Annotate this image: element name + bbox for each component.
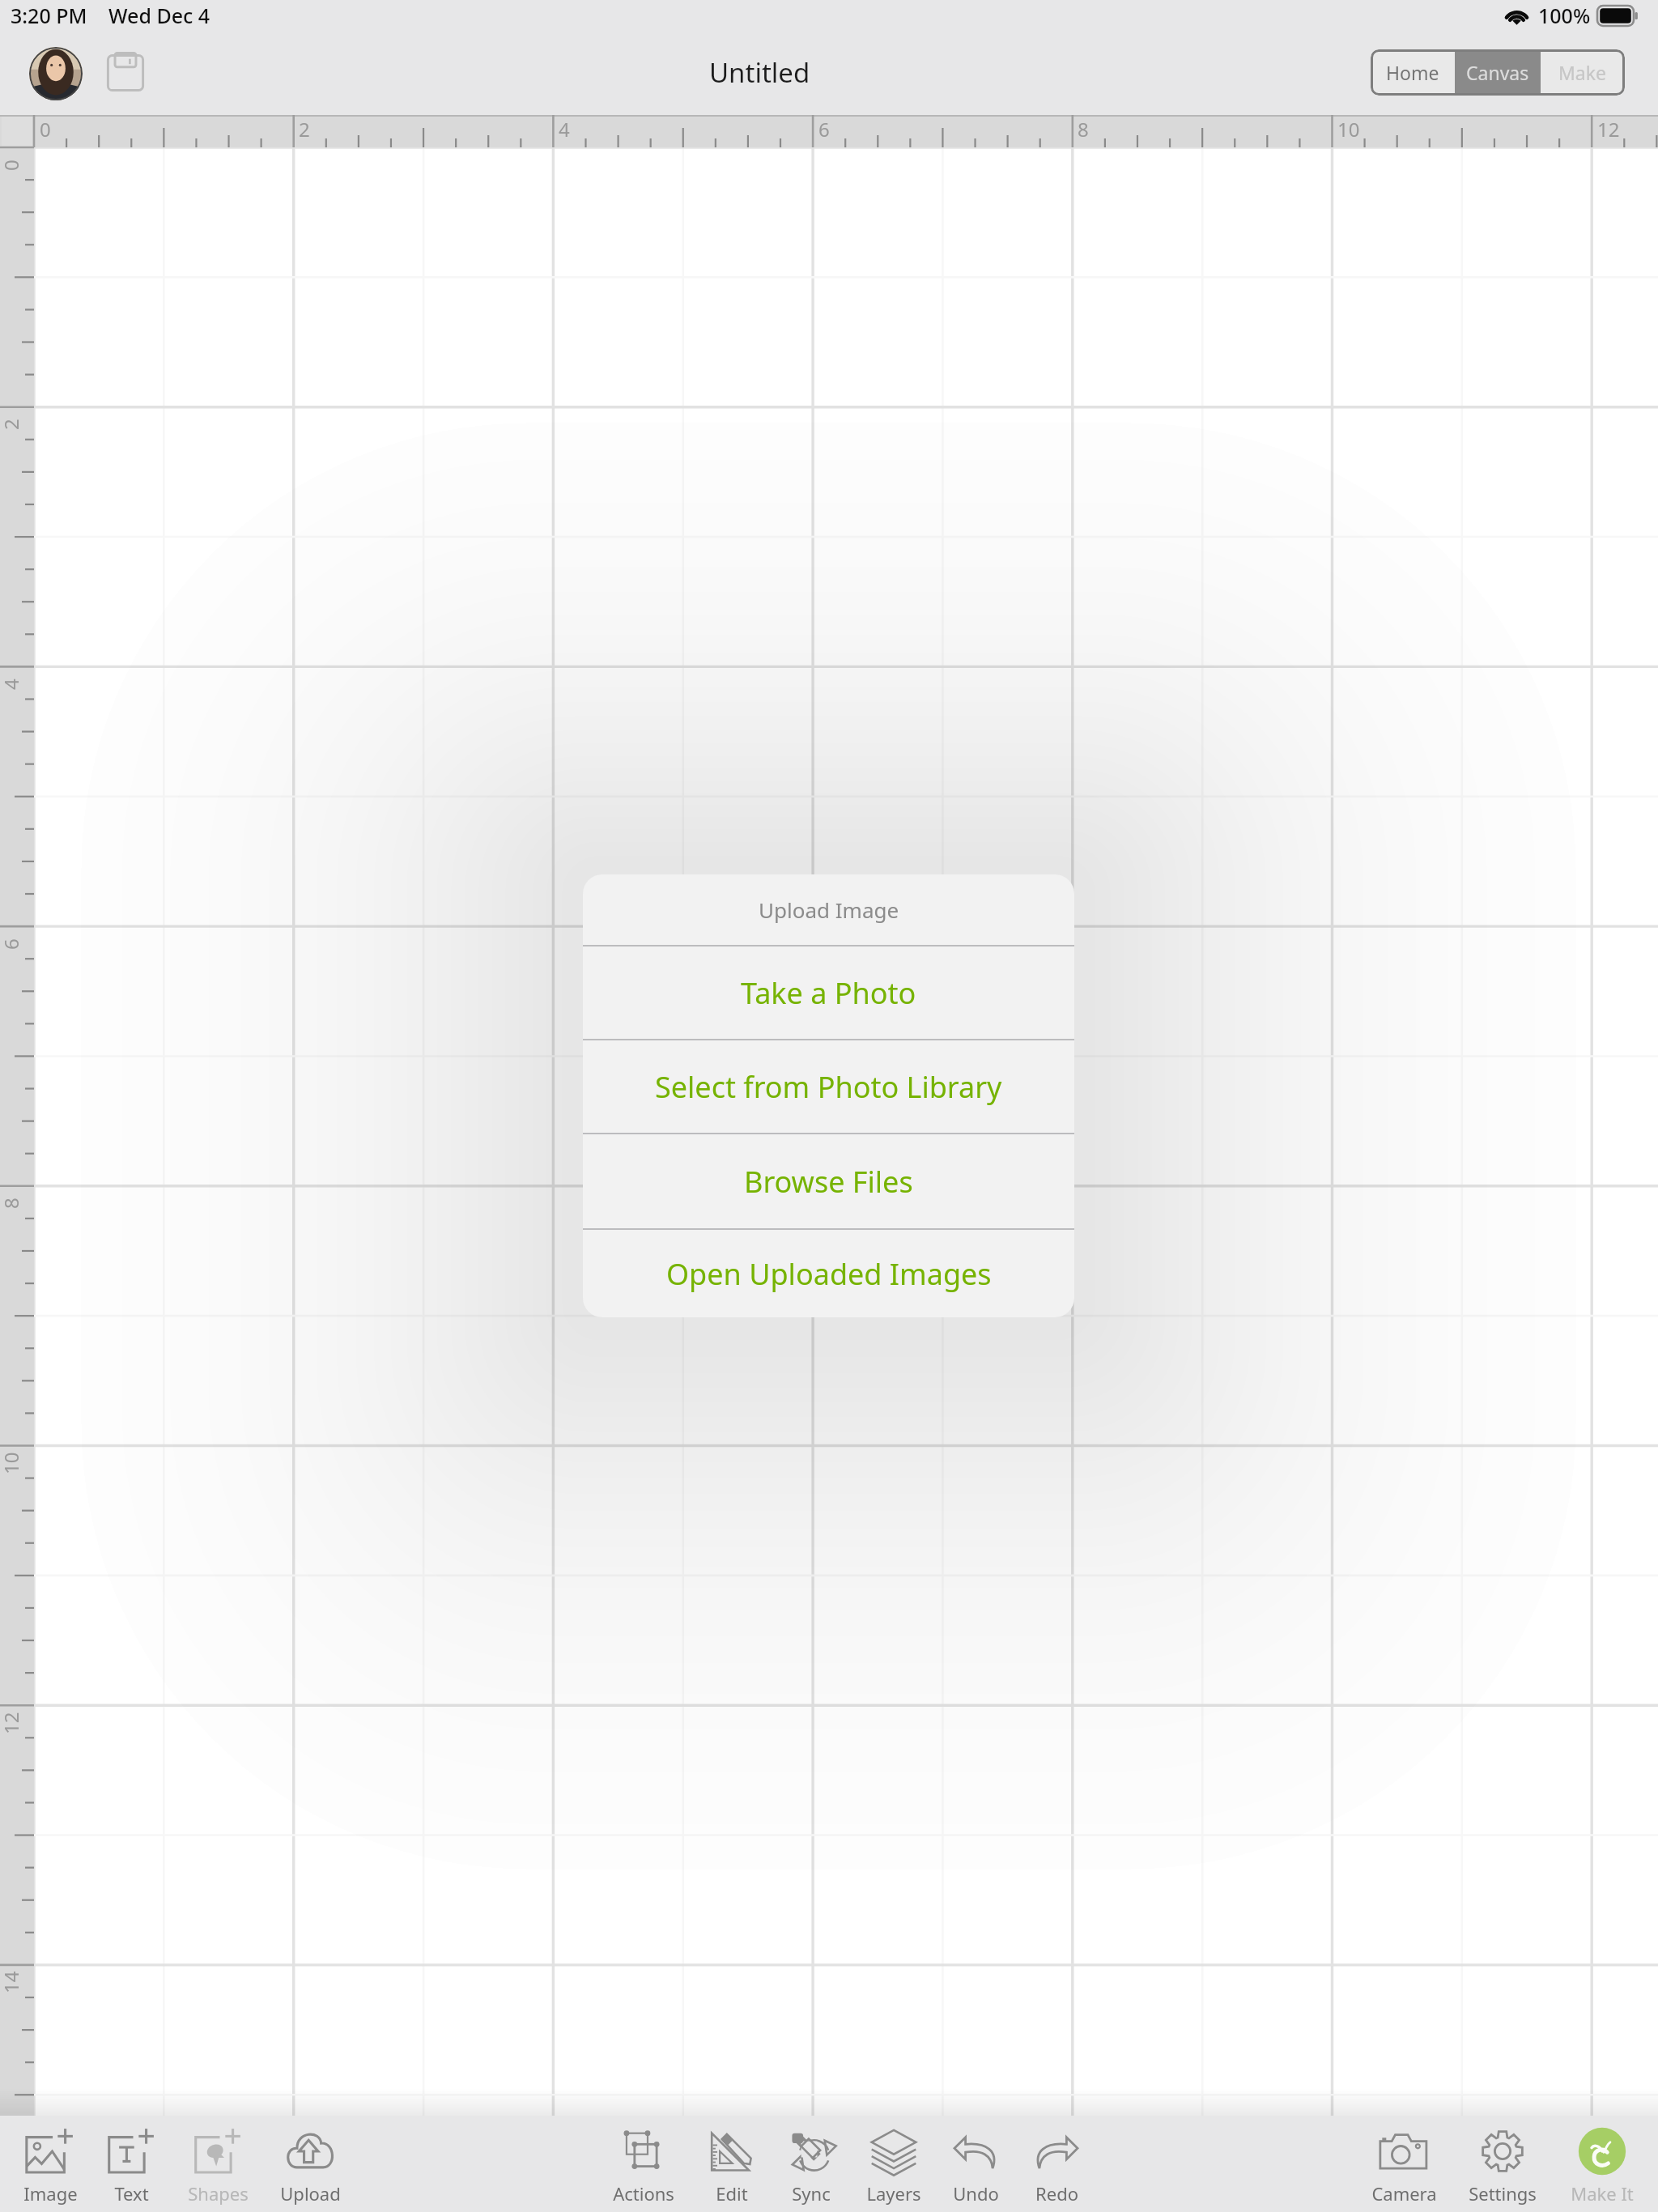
staticText: 100% bbox=[1538, 2, 1591, 29]
staticText: 14 bbox=[0, 1971, 24, 1993]
staticText: Actions bbox=[613, 2181, 674, 2206]
button[interactable]: Actions bbox=[583, 2126, 704, 2207]
button[interactable]: Make It bbox=[1541, 2126, 1658, 2207]
staticText: 6 bbox=[818, 116, 830, 143]
button[interactable]: Layers bbox=[833, 2126, 954, 2207]
button[interactable]: Undo bbox=[915, 2126, 1036, 2207]
button[interactable]: Profile bbox=[29, 47, 83, 100]
staticText: 10 bbox=[1337, 116, 1360, 143]
button[interactable]: Save bbox=[104, 51, 147, 95]
staticText: Wed Dec 4 bbox=[108, 2, 210, 29]
staticText: 12 bbox=[1597, 116, 1620, 143]
button[interactable]: Select from Photo Library bbox=[583, 1040, 1074, 1133]
staticText: 2 bbox=[299, 116, 310, 143]
button[interactable]: Camera bbox=[1343, 2126, 1465, 2207]
staticText: Make It bbox=[1571, 2181, 1634, 2206]
staticText: Redo bbox=[1035, 2181, 1078, 2206]
staticText: 2 bbox=[0, 419, 24, 430]
staticText: Edit bbox=[716, 2181, 748, 2206]
button[interactable]: Sync bbox=[750, 2126, 872, 2207]
staticText: 8 bbox=[1078, 116, 1089, 143]
staticText: Home bbox=[1386, 60, 1439, 85]
staticText: 6 bbox=[0, 938, 24, 950]
staticText: Make bbox=[1558, 60, 1607, 85]
staticText: Text bbox=[114, 2181, 149, 2206]
button[interactable]: Canvas bbox=[1455, 49, 1541, 96]
button[interactable]: Browse Files bbox=[583, 1134, 1074, 1228]
staticText: Select from Photo Library bbox=[655, 1067, 1002, 1107]
button[interactable]: Take a Photo bbox=[583, 946, 1074, 1039]
staticText: 4 bbox=[559, 116, 570, 143]
staticText: Undo bbox=[953, 2181, 999, 2206]
staticText: 8 bbox=[0, 1197, 24, 1209]
staticText: Layers bbox=[866, 2181, 921, 2206]
button[interactable]: Image bbox=[0, 2126, 111, 2207]
staticText: Open Uploaded Images bbox=[666, 1254, 992, 1294]
staticText: Settings bbox=[1469, 2181, 1537, 2206]
button[interactable]: Edit bbox=[671, 2126, 793, 2207]
staticText: 4 bbox=[0, 678, 24, 690]
staticText: 0 bbox=[40, 116, 51, 143]
button[interactable]: Make bbox=[1541, 49, 1625, 96]
staticText: Take a Photo bbox=[741, 973, 916, 1013]
staticText: Sync bbox=[792, 2181, 831, 2206]
staticText: 0 bbox=[0, 160, 24, 171]
staticText: Untitled bbox=[709, 54, 810, 91]
button[interactable]: Shapes bbox=[157, 2126, 278, 2207]
staticText: 10 bbox=[0, 1452, 24, 1474]
button[interactable]: Text bbox=[70, 2126, 192, 2207]
button[interactable]: Home bbox=[1371, 49, 1455, 96]
staticText: Upload bbox=[280, 2181, 341, 2206]
staticText: 3:20 PM bbox=[11, 2, 87, 29]
staticText: Canvas bbox=[1466, 60, 1529, 85]
staticText: Shapes bbox=[188, 2181, 249, 2206]
staticText: Upload Image bbox=[759, 895, 899, 924]
button[interactable]: Open Uploaded Images bbox=[583, 1230, 1074, 1317]
button[interactable]: Redo bbox=[996, 2126, 1117, 2207]
staticText: Camera bbox=[1371, 2181, 1437, 2206]
staticText: Browse Files bbox=[744, 1162, 913, 1202]
button[interactable]: Settings bbox=[1442, 2126, 1563, 2207]
staticText: 12 bbox=[0, 1712, 24, 1734]
staticText: Image bbox=[23, 2181, 78, 2206]
button[interactable]: Upload bbox=[249, 2126, 371, 2207]
